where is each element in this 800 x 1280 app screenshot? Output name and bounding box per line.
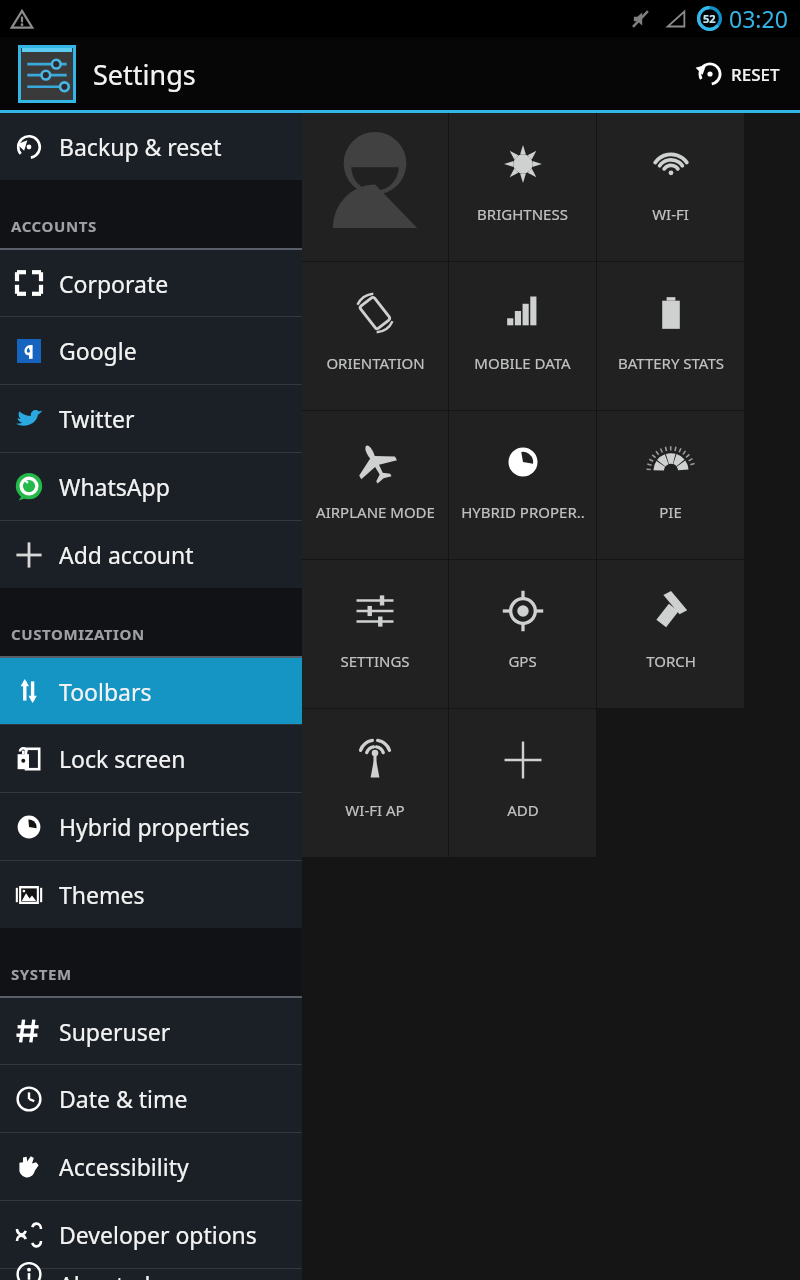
button[interactable]: HYBRID PROPER.. [449, 411, 596, 559]
staticText: AIRPLANE MODE [316, 502, 435, 522]
staticText: Themes [59, 879, 145, 910]
button[interactable]: Backup & reset [0, 113, 302, 180]
button[interactable]: Profile [302, 113, 448, 261]
button[interactable]: Corporate [0, 250, 302, 316]
staticText: Backup & reset [59, 131, 222, 162]
staticText: WI-FI [652, 204, 689, 224]
button[interactable]: ADD [449, 709, 596, 857]
staticText: ADD [507, 800, 539, 820]
button[interactable]: Google [0, 317, 302, 384]
button[interactable]: AIRPLANE MODE [302, 411, 448, 559]
staticText: Hybrid properties [59, 811, 250, 842]
button[interactable]: About phone [0, 1269, 302, 1280]
staticText: WhatsApp [59, 471, 170, 502]
staticText: ACCOUNTS [11, 216, 97, 236]
staticText: ORIENTATION [326, 353, 425, 373]
staticText: TORCH [646, 651, 696, 671]
button[interactable]: GPS [449, 560, 596, 708]
staticText: Google [59, 335, 137, 366]
staticText: MOBILE DATA [474, 353, 571, 373]
staticText: WI-FI AP [345, 800, 405, 820]
button[interactable]: WI-FI [597, 113, 744, 261]
staticText: BRIGHTNESS [477, 204, 568, 224]
button[interactable]: SETTINGS [302, 560, 448, 708]
staticText: Twitter [59, 403, 135, 434]
staticText: PIE [659, 502, 682, 522]
button[interactable]: MOBILE DATA [449, 262, 596, 410]
staticText: CUSTOMIZATION [11, 624, 145, 644]
button[interactable]: Date & time [0, 1065, 302, 1132]
button[interactable]: TORCH [597, 560, 744, 708]
button[interactable]: WhatsApp [0, 453, 302, 520]
staticText: Settings [93, 56, 196, 93]
staticText: RESET [731, 63, 780, 86]
staticText: BATTERY STATS [618, 353, 724, 373]
button[interactable]: WI-FI AP [302, 709, 448, 857]
button[interactable]: RESET [690, 52, 786, 96]
button[interactable]: BATTERY STATS [597, 262, 744, 410]
staticText: HYBRID PROPER.. [461, 502, 585, 522]
staticText: Toolbars [59, 676, 152, 707]
staticText: Superuser [59, 1016, 171, 1047]
staticText: SYSTEM [11, 964, 72, 984]
button[interactable]: Themes [0, 861, 302, 928]
button[interactable]: Hybrid properties [0, 793, 302, 860]
button[interactable]: Developer options [0, 1201, 302, 1268]
button[interactable]: Superuser [0, 998, 302, 1064]
staticText: Corporate [59, 268, 169, 299]
button[interactable]: BRIGHTNESS [449, 113, 596, 261]
button[interactable]: ORIENTATION [302, 262, 448, 410]
button[interactable]: Twitter [0, 385, 302, 452]
button[interactable]: PIE [597, 411, 744, 559]
button[interactable]: Toolbars [0, 658, 302, 724]
staticText: SETTINGS [340, 651, 410, 671]
staticText: Developer options [59, 1219, 257, 1250]
staticText: Add account [59, 539, 194, 570]
staticText: 52 [703, 11, 716, 26]
staticText: Accessibility [59, 1151, 189, 1182]
button[interactable]: Accessibility [0, 1133, 302, 1200]
staticText: Date & time [59, 1083, 188, 1114]
button[interactable]: Lock screen [0, 725, 302, 792]
staticText: About phone [59, 1269, 200, 1280]
staticText: Lock screen [59, 743, 186, 774]
staticText: 03:20 [729, 3, 788, 34]
button[interactable]: Add account [0, 521, 302, 588]
staticText: GPS [508, 651, 537, 671]
